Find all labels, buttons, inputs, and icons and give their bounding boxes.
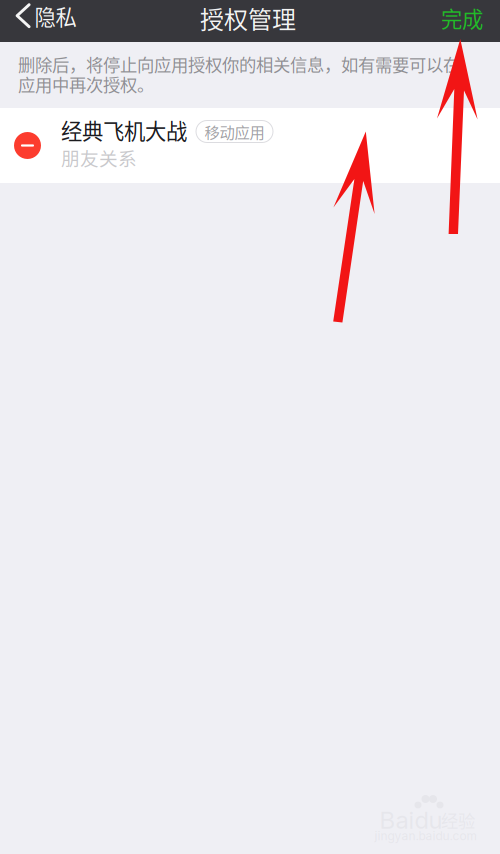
button[interactable]: 完成 xyxy=(425,0,500,39)
staticText: 移动应用 xyxy=(204,120,264,143)
staticText: 删除后，将停止向应用授权你的相关信息，如有需要可以在 xyxy=(18,51,460,77)
staticText: 授权管理 xyxy=(200,1,296,35)
staticText: 经典飞机大战 xyxy=(61,115,187,145)
button[interactable]: 经典飞机大战 xyxy=(0,108,500,183)
staticText: 隐私 xyxy=(34,1,76,31)
staticText: 朋友关系 xyxy=(61,144,137,171)
staticText: 应用中再次授权。 xyxy=(18,71,154,97)
staticText: 完成 xyxy=(441,3,483,33)
button[interactable]: 隐私 xyxy=(0,0,88,36)
staticText: Baidu xyxy=(379,805,442,834)
